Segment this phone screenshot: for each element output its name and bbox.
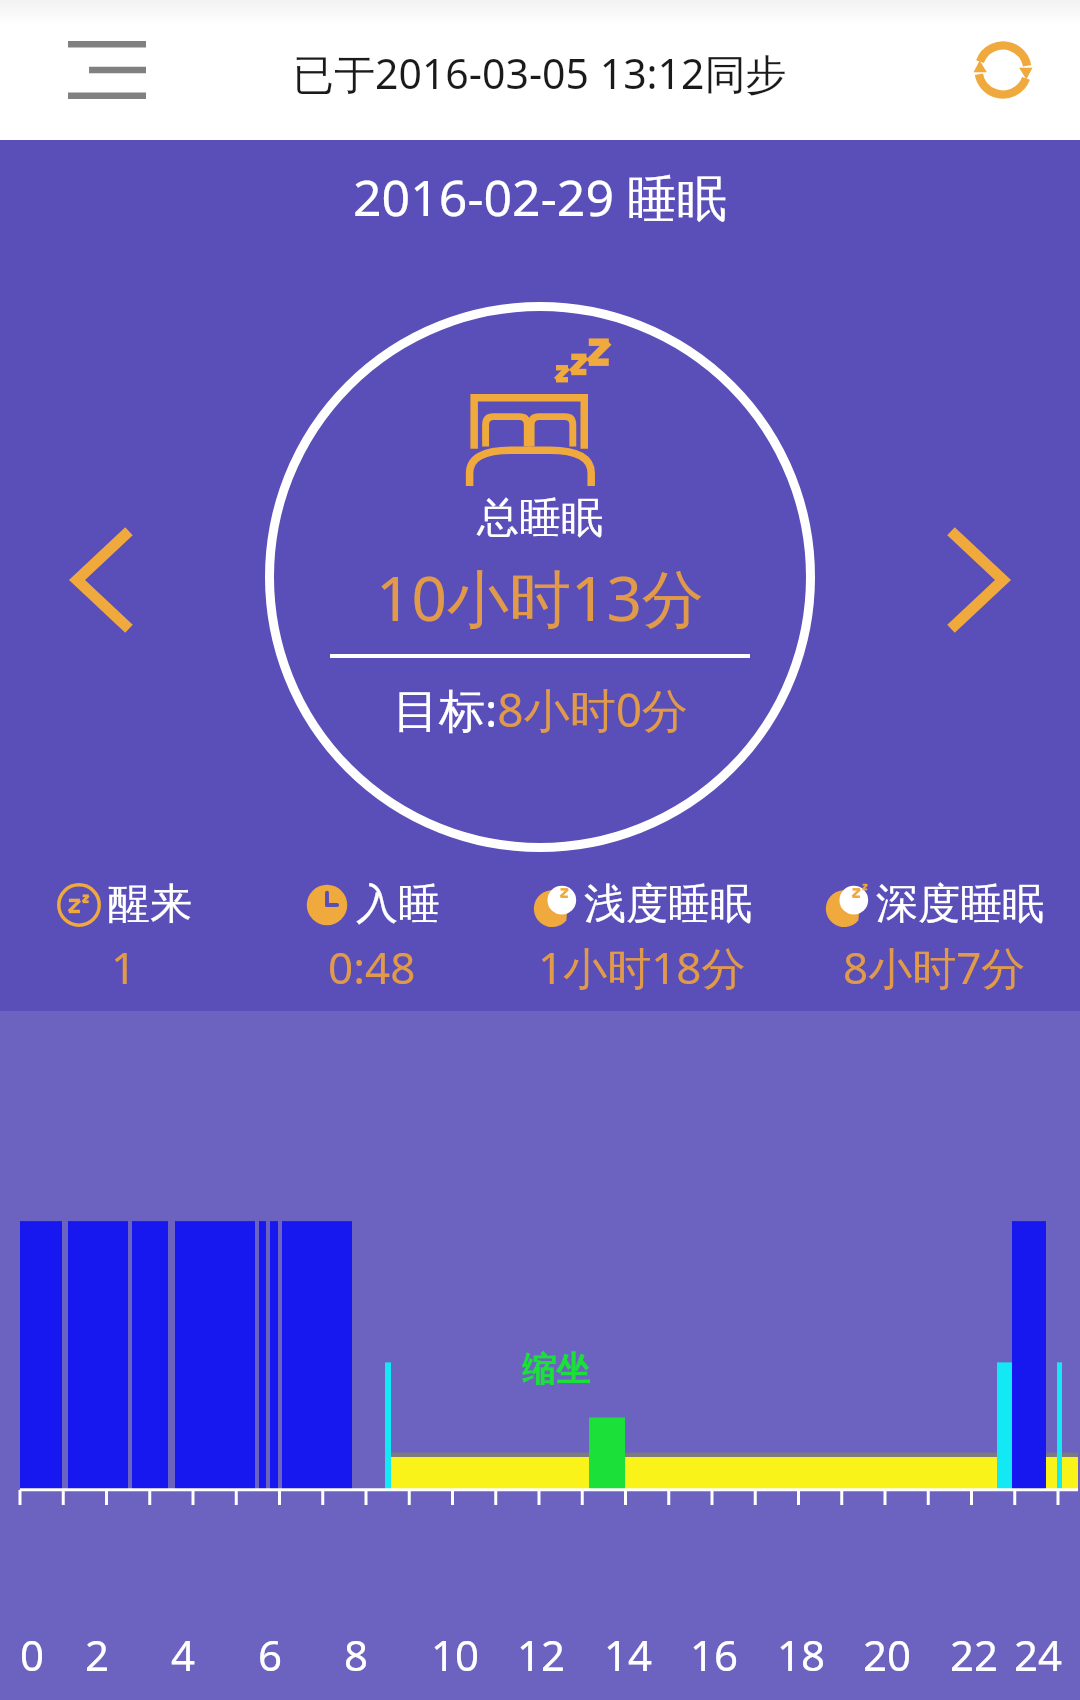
staticText: 4 (171, 1626, 196, 1683)
staticText: 6 (258, 1626, 283, 1683)
staticText: 深度睡眠 (876, 878, 1044, 931)
staticText: 10 (431, 1626, 480, 1683)
button[interactable]: 醒来 (0, 878, 248, 997)
staticText: 醒来 (108, 878, 192, 931)
staticText: 8小时7分 (843, 937, 1026, 997)
staticText: 0 (20, 1626, 45, 1683)
staticText: 1小时18分 (538, 937, 746, 997)
staticText: 8 (344, 1626, 369, 1683)
staticText: 总睡眠 (477, 492, 603, 545)
button[interactable]: Next day (924, 520, 1034, 640)
staticText: 入睡 (356, 878, 440, 931)
button[interactable]: 深度睡眠 (788, 878, 1080, 997)
button[interactable]: 入睡 (248, 878, 496, 997)
staticText: 2 (85, 1626, 110, 1683)
staticText: 10小时13分 (376, 555, 704, 640)
staticText: 已于2016-03-05 13:12同步 (293, 45, 787, 101)
button[interactable]: Sync (948, 15, 1058, 125)
button[interactable]: 浅度睡眠 (496, 878, 788, 997)
staticText: 18 (777, 1626, 826, 1683)
staticText: 浅度睡眠 (584, 878, 752, 931)
button[interactable]: Menu (52, 15, 162, 125)
staticText: 2016-02-29 睡眠 (353, 163, 727, 231)
staticText: 24 (1014, 1626, 1063, 1683)
staticText: 0:48 (328, 937, 416, 997)
button[interactable]: Previous day (46, 520, 156, 640)
staticText: 12 (517, 1626, 566, 1683)
staticText: 20 (863, 1626, 912, 1683)
staticText: 目标:8小时0分 (393, 678, 688, 741)
staticText: 16 (690, 1626, 739, 1683)
staticText: 1 (111, 937, 137, 997)
staticText: 14 (604, 1626, 653, 1683)
staticText: 缩坐 (522, 1348, 590, 1391)
staticText: 22 (950, 1626, 999, 1683)
